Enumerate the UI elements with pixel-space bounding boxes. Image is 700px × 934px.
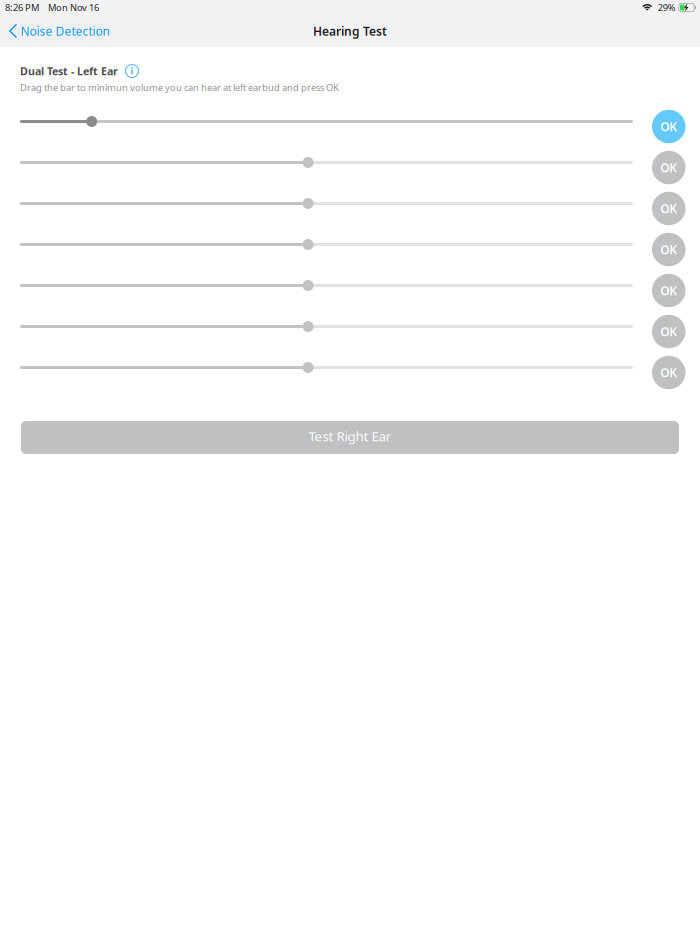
button[interactable]: Test Right Ear [21,421,679,454]
button[interactable]: Noise Detection [0,18,117,44]
staticText: 29% [658,1,676,14]
staticText: Dual Test - Left Ear [20,64,118,78]
staticText: Drag the bar to minimun volume you can h… [20,81,339,94]
button[interactable]: OK [652,233,685,266]
staticText: OK [660,159,677,175]
button[interactable]: More information [125,64,139,78]
button[interactable]: OK [652,151,685,184]
button[interactable]: OK [652,192,685,225]
button[interactable]: Volume level 2 [20,156,633,168]
button[interactable]: OK [652,110,685,143]
button[interactable]: Volume level 3 [20,197,633,209]
button[interactable]: Volume level 4 [20,238,633,250]
button[interactable]: OK [652,356,685,389]
button[interactable]: Volume level 1 [20,115,633,127]
staticText: OK [660,323,677,339]
staticText: OK [660,118,677,134]
staticText: Noise Detection [20,23,109,39]
staticText: Mon Nov 16 [48,1,99,14]
button[interactable]: OK [652,274,685,307]
staticText: OK [660,282,677,298]
staticText: OK [660,364,677,380]
staticText: Hearing Test [313,23,387,39]
button[interactable]: OK [652,315,685,348]
button[interactable]: Volume level 7 [20,361,633,373]
staticText: 8:26 PM [5,1,39,14]
staticText: Test Right Ear [308,427,391,445]
button[interactable]: Volume level 6 [20,320,633,332]
staticText: OK [660,200,677,216]
button[interactable]: Volume level 5 [20,279,633,291]
staticText: OK [660,241,677,257]
